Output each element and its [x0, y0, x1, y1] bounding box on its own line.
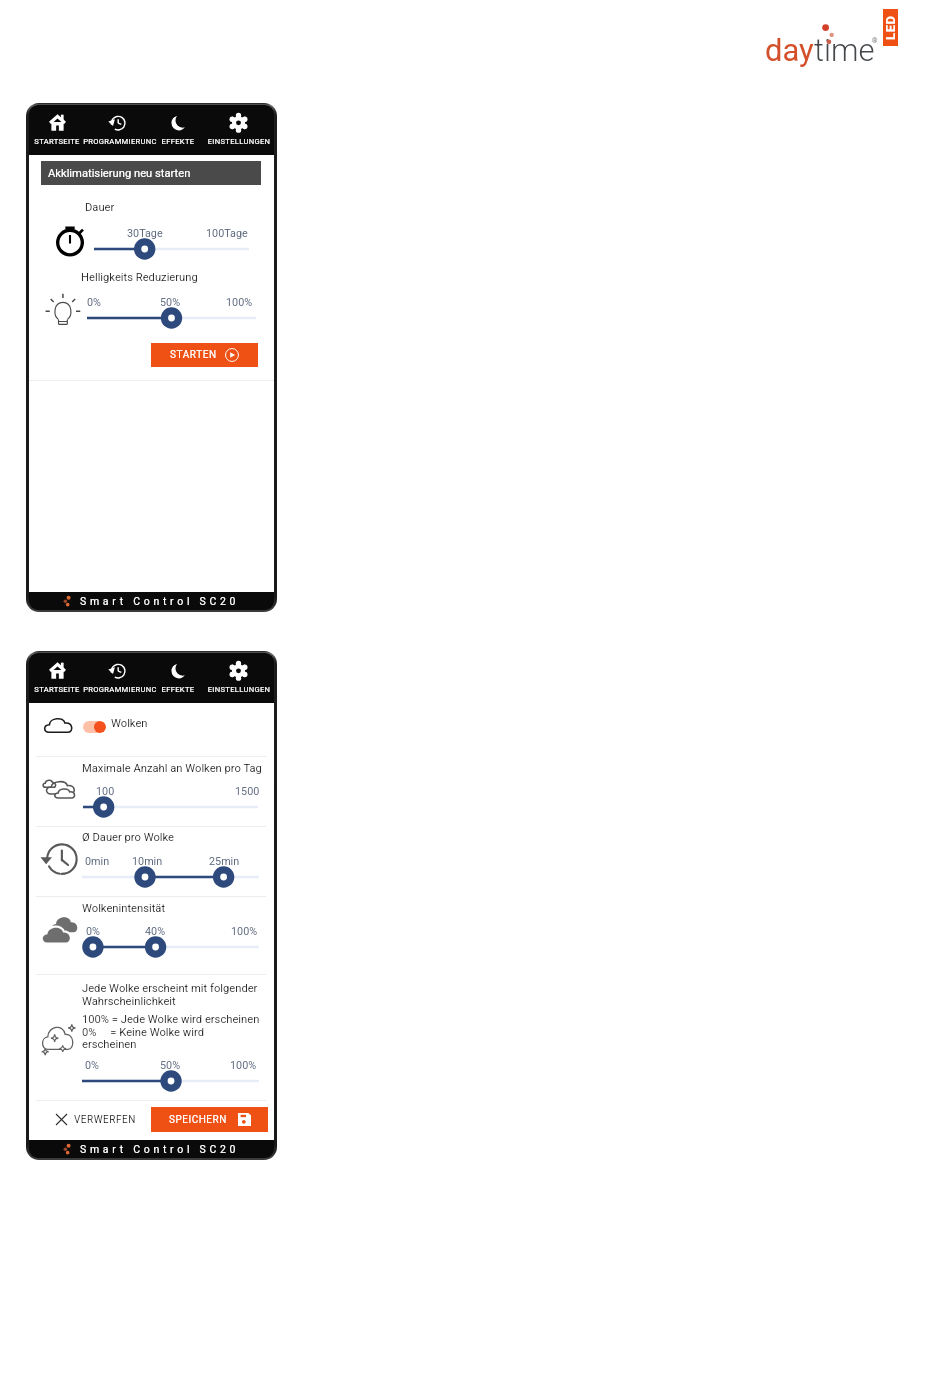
staticText: day	[765, 32, 814, 68]
staticText: PROGRAMMIERUNC	[81, 685, 159, 694]
staticText: 100% = Jede Wolke wird erscheinen 0% = K…	[82, 1013, 260, 1051]
staticText: Jede Wolke erscheint mit folgender Wahrs…	[82, 982, 258, 1008]
staticText: Akklimatisierung neu starten	[48, 167, 191, 180]
other: Starten	[225, 348, 239, 362]
staticText: Ø Dauer pro Wolke	[82, 831, 175, 844]
staticText: VERWERFEN	[74, 1114, 136, 1126]
staticText: 25min	[209, 855, 240, 868]
other: Einstellungen	[230, 114, 247, 131]
staticText: 10min	[132, 855, 163, 868]
other: Programmierung	[109, 114, 126, 131]
staticText: ®	[872, 37, 878, 45]
button[interactable]: Einstellungen	[206, 653, 272, 697]
staticText: 100Tage	[206, 227, 248, 240]
other: Programmierung	[109, 662, 126, 679]
staticText: STARTEN	[170, 349, 217, 361]
staticText: Maximale Anzahl an Wolken pro Tag	[82, 762, 262, 775]
staticText: time	[814, 32, 875, 68]
staticText: 1500	[235, 785, 260, 798]
staticText: 100%	[226, 296, 253, 309]
staticText: STARTSEITE	[29, 685, 85, 694]
staticText: PROGRAMMIERUNC	[81, 137, 159, 146]
staticText: 50%	[160, 1059, 181, 1072]
button[interactable]	[83, 721, 106, 733]
staticText: 100%	[230, 1059, 257, 1072]
other: Effekte	[171, 114, 188, 131]
staticText: 40%	[145, 925, 166, 938]
staticText: 30Tage	[127, 227, 163, 240]
staticText: 0min	[85, 855, 110, 868]
staticText: Smart Control SC20	[80, 1143, 240, 1155]
staticText: Helligkeits Reduzierung	[81, 271, 198, 284]
staticText: 100%	[231, 925, 258, 938]
button[interactable]: Einstellungen	[206, 105, 272, 149]
staticText: Wolkenintensität	[82, 902, 166, 915]
staticText: EFFEKTE	[152, 137, 204, 146]
staticText: STARTSEITE	[29, 137, 85, 146]
staticText: SPEICHERN	[169, 1114, 227, 1126]
staticText: Smart Control SC20	[80, 595, 240, 607]
other: Verwerfen	[56, 1114, 67, 1125]
staticText: 100	[96, 785, 115, 798]
staticText: LED	[883, 15, 898, 40]
other: Startseite	[49, 114, 66, 131]
other: Speichern	[238, 1113, 251, 1126]
button[interactable]: Programmierung	[81, 653, 159, 697]
staticText: EFFEKTE	[152, 685, 204, 694]
button[interactable]: Effekte	[152, 653, 204, 697]
button[interactable]: SPEICHERN	[151, 1107, 268, 1132]
other: Einstellungen	[230, 662, 247, 679]
staticText: 0%	[85, 1059, 99, 1072]
button[interactable]: Startseite	[29, 105, 85, 149]
button[interactable]: Programmierung	[81, 105, 159, 149]
staticText: Dauer	[85, 201, 115, 214]
other: Startseite	[49, 662, 66, 679]
staticText: EINSTELLUNGEN	[206, 137, 272, 146]
other: Effekte	[171, 662, 188, 679]
button[interactable]: STARTEN	[151, 343, 258, 367]
staticText: Wolken	[111, 717, 148, 730]
staticText: 0%	[86, 925, 100, 938]
button[interactable]: Effekte	[152, 105, 204, 149]
button[interactable]: Startseite	[29, 653, 85, 697]
staticText: 0%	[87, 296, 101, 309]
staticText: EINSTELLUNGEN	[206, 685, 272, 694]
staticText: 50%	[160, 296, 181, 309]
button[interactable]: Verwerfen	[29, 1107, 151, 1132]
